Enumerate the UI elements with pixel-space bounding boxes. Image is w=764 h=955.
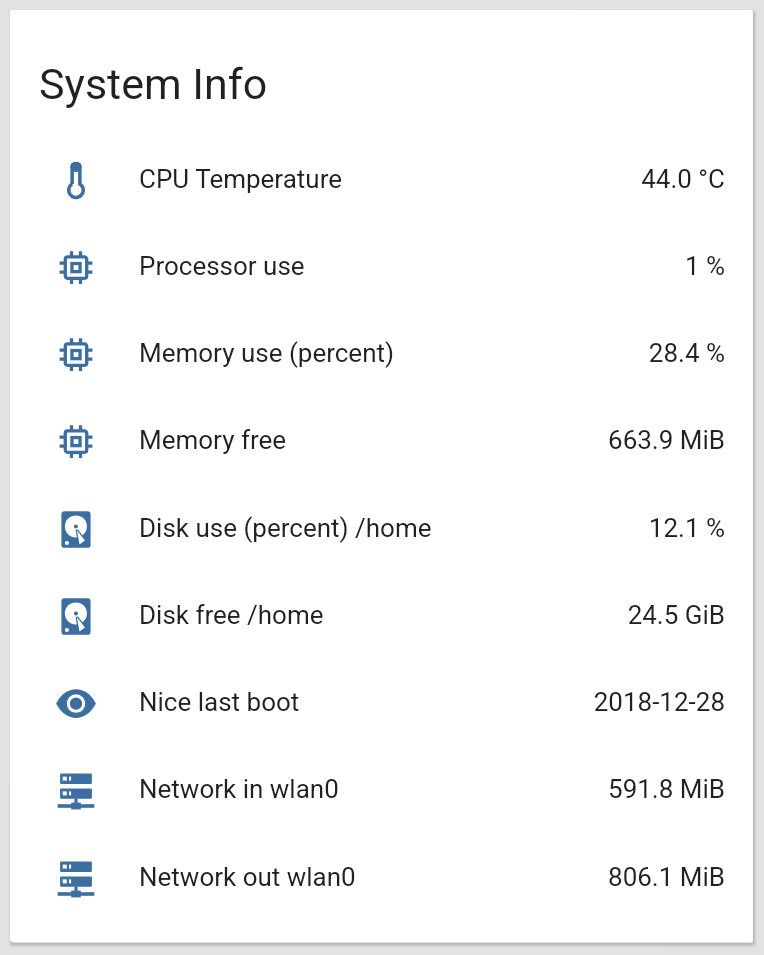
staticText: 44.0 °C (641, 164, 725, 194)
staticText: Memory free (139, 425, 287, 455)
staticText: 28.4 % (648, 338, 725, 368)
staticText: 1 % (684, 251, 725, 281)
staticText: 591.8 MiB (608, 774, 725, 804)
other: Disk use (percent) /home (55, 507, 97, 549)
staticText: Network out wlan0 (139, 862, 356, 892)
staticText: Disk free /home (139, 600, 324, 630)
staticText: Memory use (percent) (139, 338, 395, 368)
other: Network in wlan0 (55, 768, 97, 810)
staticText: Disk use (percent) /home (139, 513, 432, 543)
other: Memory use (percent) (55, 332, 97, 374)
staticText: Processor use (139, 251, 305, 281)
staticText: 806.1 MiB (608, 862, 725, 892)
button[interactable]: Disk free /home (10, 571, 753, 658)
other: Nice last boot (55, 681, 97, 723)
button[interactable]: Network out wlan0 (10, 833, 753, 920)
button[interactable]: Memory use (percent) (10, 309, 753, 396)
button[interactable]: Nice last boot (10, 658, 753, 745)
staticText: Network in wlan0 (139, 774, 339, 804)
button[interactable]: CPU Temperature (10, 135, 753, 222)
staticText: System Info (39, 59, 268, 109)
other: Memory free (55, 419, 97, 461)
other: Network out wlan0 (55, 856, 97, 898)
staticText: 24.5 GiB (627, 600, 725, 630)
other: Processor use (55, 245, 97, 287)
other: Disk free /home (55, 594, 97, 636)
staticText: CPU Temperature (139, 164, 342, 194)
button[interactable]: Network in wlan0 (10, 745, 753, 832)
button[interactable]: Processor use (10, 222, 753, 309)
staticText: 2018-12-28 (593, 687, 725, 717)
other: CPU Temperature (55, 158, 97, 200)
staticText: 12.1 % (648, 513, 725, 543)
staticText: 663.9 MiB (608, 425, 725, 455)
button[interactable]: Disk use (percent) /home (10, 484, 753, 571)
button[interactable]: Memory free (10, 396, 753, 483)
staticText: Nice last boot (139, 687, 300, 717)
